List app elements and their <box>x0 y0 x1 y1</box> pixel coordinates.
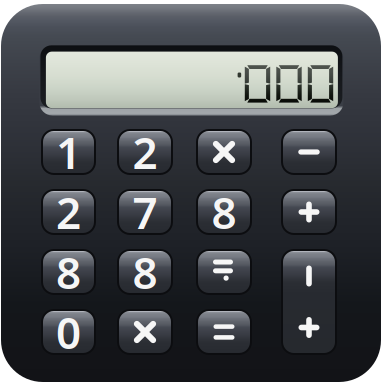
button[interactable]: 1 <box>41 129 96 175</box>
button[interactable]: Multiply <box>117 309 173 355</box>
staticText: 8 <box>132 243 157 301</box>
staticText: 7 <box>132 183 157 241</box>
button[interactable]: Equals <box>196 309 252 355</box>
button[interactable]: 8 <box>117 249 173 295</box>
button[interactable]: 2 <box>41 189 96 235</box>
button[interactable]: Divide <box>196 249 252 295</box>
button[interactable]: 2 <box>117 129 173 175</box>
button[interactable]: Plus <box>281 189 337 235</box>
button[interactable]: Minus <box>281 129 337 175</box>
button[interactable]: Add <box>281 249 337 355</box>
button[interactable]: Multiply <box>196 129 252 175</box>
staticText: 0 <box>56 303 81 361</box>
staticText: 2 <box>132 123 157 181</box>
button[interactable]: 8 <box>41 249 96 295</box>
staticText: 1 <box>56 123 81 181</box>
button[interactable]: 7 <box>117 189 173 235</box>
staticText: 8 <box>211 183 236 241</box>
staticText: 2 <box>56 183 81 241</box>
button[interactable]: 8 <box>196 189 252 235</box>
staticText: 8 <box>56 243 81 301</box>
button[interactable]: 0 <box>41 309 96 355</box>
